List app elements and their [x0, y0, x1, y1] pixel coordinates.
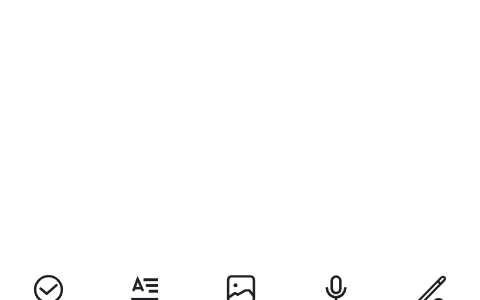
button[interactable]: Drawing: [384, 0, 480, 300]
button[interactable]: New list: [0, 0, 96, 300]
button[interactable]: Add image: [192, 0, 288, 300]
button[interactable]: Text formatting: [96, 0, 192, 300]
button[interactable]: Voice recording: [288, 0, 384, 300]
